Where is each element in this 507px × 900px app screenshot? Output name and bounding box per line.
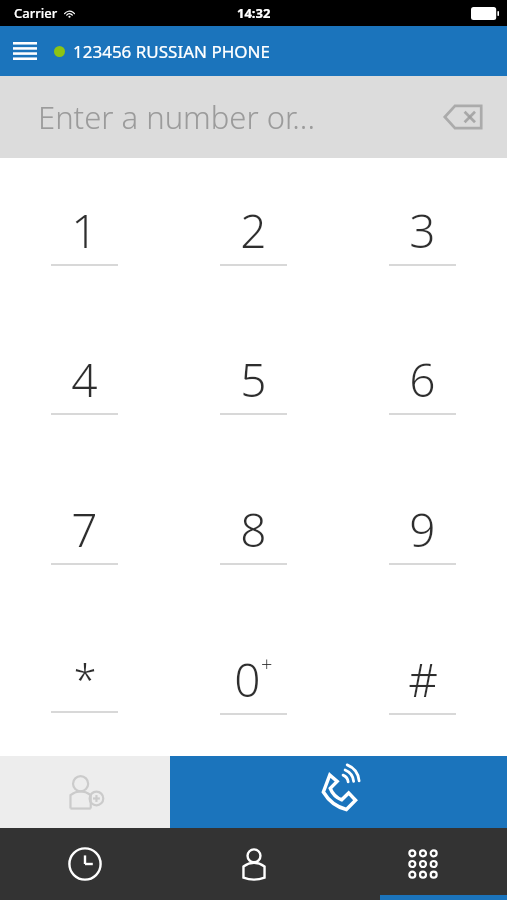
button[interactable]: * xyxy=(0,606,169,756)
button[interactable]: Call xyxy=(170,756,507,828)
staticText: 7 xyxy=(71,498,98,561)
button[interactable]: 1 xyxy=(0,158,169,307)
staticText: 4 xyxy=(71,348,98,411)
staticText: 8 xyxy=(240,498,267,561)
button[interactable]: Recents xyxy=(0,828,169,900)
button[interactable]: 0 xyxy=(169,606,338,756)
staticText: * xyxy=(73,650,97,707)
button[interactable]: Backspace xyxy=(437,91,489,143)
staticText: 14:32 xyxy=(237,4,271,22)
staticText: Carrier xyxy=(14,4,58,22)
button[interactable]: Keypad xyxy=(338,828,507,900)
staticText: Enter a number or... xyxy=(38,96,315,138)
staticText: 2 xyxy=(240,199,267,262)
button[interactable]: # xyxy=(338,606,507,756)
button[interactable]: 9 xyxy=(338,456,507,606)
button[interactable]: Add contact xyxy=(0,756,170,828)
staticText: 3 xyxy=(409,199,436,262)
staticText: 6 xyxy=(409,348,436,411)
staticText: 123456 RUSSIAN PHONE xyxy=(73,40,270,63)
staticText: 1 xyxy=(71,199,98,262)
button[interactable]: 4 xyxy=(0,307,169,456)
button[interactable]: 3 xyxy=(338,158,507,307)
button[interactable]: 6 xyxy=(338,307,507,456)
button[interactable]: 7 xyxy=(0,456,169,606)
staticText: 0 xyxy=(234,648,261,711)
staticText: # xyxy=(408,648,438,711)
staticText: + xyxy=(261,650,273,677)
button[interactable]: 5 xyxy=(169,307,338,456)
button[interactable]: Menu xyxy=(0,26,50,76)
staticText: 9 xyxy=(409,498,436,561)
button[interactable]: Contacts xyxy=(169,828,338,900)
staticText: 5 xyxy=(240,348,267,411)
button[interactable]: 2 xyxy=(169,158,338,307)
button[interactable]: 8 xyxy=(169,456,338,606)
